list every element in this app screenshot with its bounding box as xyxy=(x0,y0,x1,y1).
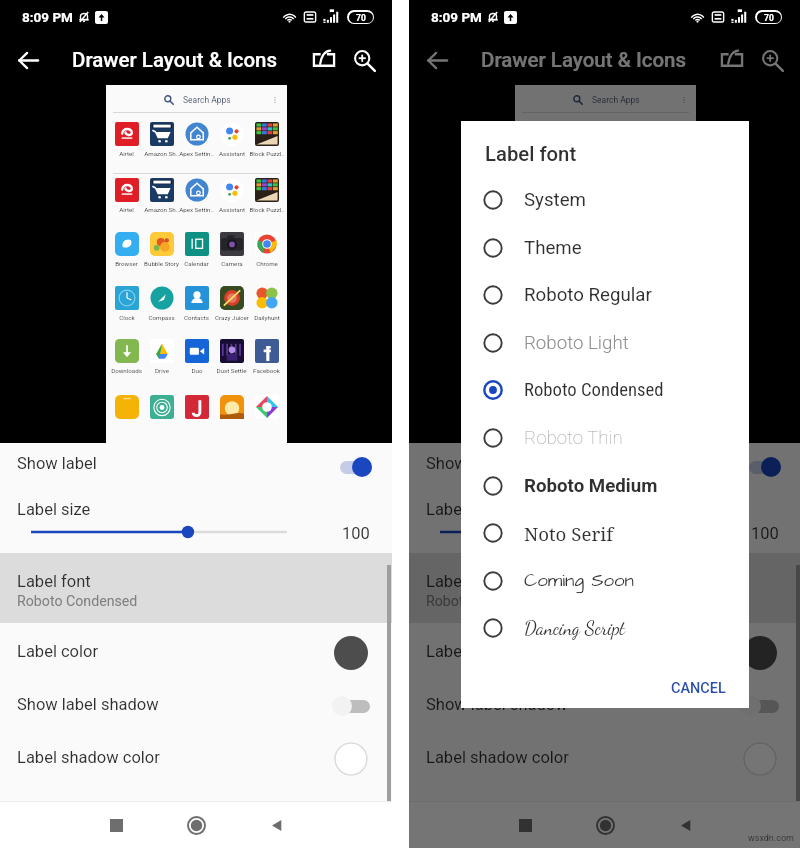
staticText: Show label shadow xyxy=(426,695,568,714)
staticText: Downloads xyxy=(111,367,142,374)
button[interactable] xyxy=(409,553,800,623)
button[interactable] xyxy=(741,694,783,718)
staticText: Theme xyxy=(524,237,582,259)
staticText: Apex Settin.. xyxy=(179,150,214,157)
staticText: 100 xyxy=(342,524,370,543)
staticText: Label font xyxy=(426,572,500,591)
button[interactable]: Zoom in xyxy=(752,40,792,80)
button[interactable]: Label color xyxy=(0,627,392,679)
staticText: Noto Serif xyxy=(524,521,614,546)
button[interactable]: Back xyxy=(663,803,707,847)
button[interactable]: Home xyxy=(583,803,627,847)
button[interactable]: Recents xyxy=(94,803,138,847)
button[interactable]: Show label xyxy=(409,443,800,491)
staticText: Amazon Sh.. xyxy=(144,206,179,213)
button[interactable]: Dancing Script xyxy=(461,604,749,652)
staticText: Label size xyxy=(17,500,91,519)
staticText: Camera xyxy=(221,260,243,267)
staticText: Airtel xyxy=(528,206,543,213)
button[interactable] xyxy=(743,455,785,479)
button[interactable]: Show label shadow xyxy=(409,680,800,732)
button[interactable]: Back xyxy=(254,803,298,847)
staticText: Clock xyxy=(119,314,135,321)
button[interactable]: Coming Soon xyxy=(461,557,749,605)
button[interactable]: Label shadow color xyxy=(0,733,392,785)
staticText: Assistant xyxy=(219,206,245,213)
button[interactable]: Share xyxy=(304,40,344,80)
staticText: Drive xyxy=(155,367,169,374)
staticText: Roboto Thin xyxy=(524,427,623,449)
staticText: Show label xyxy=(17,454,97,473)
button[interactable]: Back xyxy=(417,40,457,80)
staticText: 8:09 PM xyxy=(431,9,482,25)
staticText: Label shadow color xyxy=(17,748,160,767)
staticText: Bubble Story xyxy=(144,260,179,267)
staticText: Calendar xyxy=(184,260,209,267)
staticText: Airtel xyxy=(528,150,543,157)
staticText: Assistant xyxy=(219,150,245,157)
button[interactable] xyxy=(0,553,392,623)
staticText: Contacts xyxy=(184,314,209,321)
button[interactable]: Roboto Condensed xyxy=(461,366,749,414)
staticText: Amazon Sh.. xyxy=(553,150,588,157)
staticText: Airtel xyxy=(119,150,134,157)
staticText: Label color xyxy=(17,642,99,661)
staticText: Amazon Sh.. xyxy=(144,150,179,157)
button[interactable]: Home xyxy=(174,803,218,847)
button[interactable]: Back xyxy=(8,40,48,80)
staticText: Coming Soon xyxy=(524,568,634,594)
button[interactable]: Zoom in xyxy=(344,40,384,80)
button[interactable]: Roboto Regular xyxy=(461,271,749,319)
button[interactable]: Show label shadow xyxy=(0,680,392,732)
staticText: Block Puzzl.. xyxy=(249,206,284,213)
staticText: Show label shadow xyxy=(17,695,159,714)
button[interactable] xyxy=(334,455,376,479)
staticText: Duo xyxy=(191,367,203,374)
button[interactable]: System xyxy=(461,176,749,224)
staticText: Airtel xyxy=(119,206,134,213)
button[interactable]: Theme xyxy=(461,224,749,272)
button[interactable]: Label shadow color xyxy=(409,733,800,785)
staticText: Search Apps xyxy=(592,95,640,105)
button[interactable]: CANCEL xyxy=(661,672,736,705)
staticText: wsxdn.com xyxy=(748,833,794,844)
staticText: Chrome xyxy=(256,260,278,267)
staticText: Roboto Medium xyxy=(524,475,658,497)
staticText: Dust Settle xyxy=(216,367,247,374)
button[interactable]: Share xyxy=(712,40,752,80)
staticText: 8:09 PM xyxy=(22,9,73,25)
button[interactable]: Roboto Thin xyxy=(461,414,749,462)
staticText: Roboto Regular xyxy=(524,284,652,306)
staticText: 70 xyxy=(764,13,774,23)
button[interactable]: Noto Serif xyxy=(461,509,749,557)
button[interactable]: Recents xyxy=(503,803,547,847)
staticText: 70 xyxy=(356,13,366,23)
staticText: Roboto Light xyxy=(524,332,629,354)
staticText: 100 xyxy=(751,524,779,543)
staticText: Block Puzzl.. xyxy=(249,150,284,157)
button[interactable]: Roboto Medium xyxy=(461,462,749,510)
button[interactable]: Roboto Light xyxy=(461,319,749,367)
button[interactable]: Label size xyxy=(0,491,392,553)
staticText: Facebook xyxy=(253,367,280,374)
button[interactable]: Label size xyxy=(409,491,800,553)
button[interactable] xyxy=(332,694,374,718)
button[interactable]: Show label xyxy=(0,443,392,491)
button[interactable]: Label color xyxy=(409,627,800,679)
staticText: Label font xyxy=(17,572,91,591)
